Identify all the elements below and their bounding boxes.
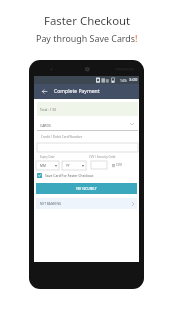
staticText: NET BANKING: [40, 202, 62, 206]
button[interactable]: NET BANKING: [36, 198, 137, 209]
button[interactable]: Back: [39, 84, 49, 99]
staticText: CVV: [116, 163, 122, 167]
staticText: CVV / Security Code: [89, 155, 116, 159]
button[interactable]: Save Card For Faster Checkout: [37, 173, 94, 178]
button[interactable]: CARDS: [37, 117, 138, 131]
button[interactable]: YY: [62, 161, 86, 170]
button[interactable]: PAY SECURELY: [36, 183, 137, 194]
staticText: 14%: [120, 78, 127, 83]
staticText: Complete Payment: [54, 88, 100, 95]
staticText: Total : ₹ 50: [40, 108, 57, 112]
staticText: Pay through Save Cards!: [36, 32, 138, 44]
staticText: PAY SECURELY: [76, 187, 97, 191]
staticText: CARDS: [40, 123, 51, 128]
staticText: Faster Checkout: [44, 13, 131, 29]
button[interactable]: MM: [36, 161, 59, 170]
staticText: 3:00: [129, 77, 138, 83]
staticText: Save Card For Faster Checkout: [45, 173, 94, 178]
staticText: MM: [40, 164, 46, 168]
staticText: YY: [66, 164, 70, 168]
staticText: Expiry Date: [40, 155, 55, 159]
staticText: Credit / Debit Card Number: [41, 135, 83, 139]
